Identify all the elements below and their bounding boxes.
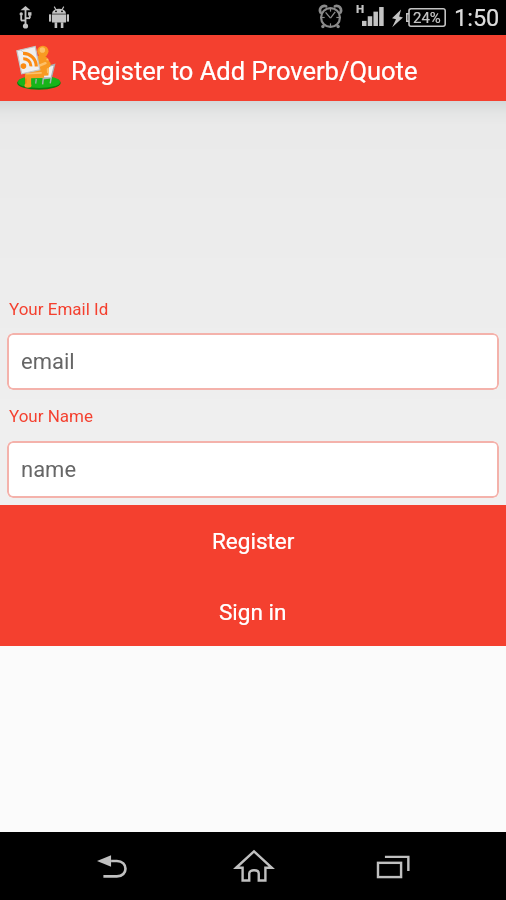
staticText: name: [21, 457, 77, 483]
staticText: Sign in: [219, 599, 287, 625]
staticText: Register: [212, 528, 295, 554]
staticText: H: [356, 2, 365, 15]
staticText: email: [21, 349, 75, 375]
button[interactable]: Sign in: [0, 577, 506, 646]
staticText: Your Email Id: [9, 299, 109, 319]
button[interactable]: Home: [213, 832, 294, 900]
other: App icon: [12, 42, 63, 95]
button[interactable]: Recent apps: [353, 832, 434, 900]
staticText: Your Name: [9, 406, 94, 426]
staticText: 24%: [413, 9, 441, 27]
staticText: Register to Add Proverb/Quote: [71, 56, 418, 86]
other: Alarm set: [319, 5, 342, 29]
button[interactable]: Register: [0, 505, 506, 577]
button[interactable]: email: [7, 333, 499, 390]
button[interactable]: name: [7, 441, 499, 498]
staticText: 1:50: [454, 4, 500, 32]
button[interactable]: Back: [72, 832, 153, 900]
other: USB connected: [19, 6, 32, 29]
other: Android: [49, 6, 69, 28]
